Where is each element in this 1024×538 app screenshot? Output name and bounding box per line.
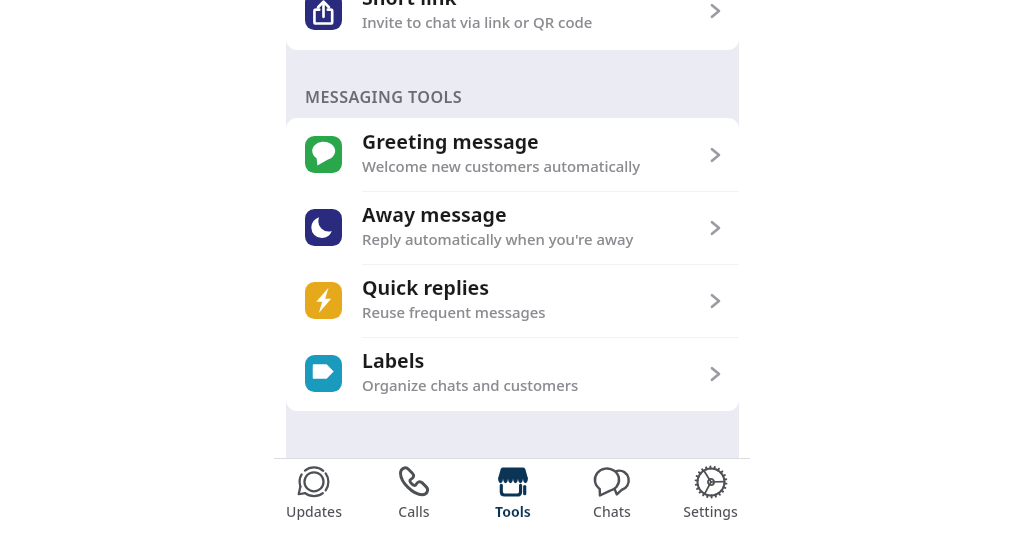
staticText: Reply automatically when you're away (362, 229, 634, 249)
button[interactable]: Calls (364, 459, 463, 538)
button[interactable]: Updates (264, 459, 364, 538)
staticText: Organize chats and customers (362, 375, 579, 395)
button[interactable]: Short link (286, 0, 739, 36)
staticText: Settings (683, 502, 738, 521)
staticText: Welcome new customers automatically (362, 156, 641, 176)
staticText: Updates (286, 502, 342, 521)
staticText: Chats (593, 502, 631, 521)
staticText: Reuse frequent messages (362, 302, 546, 322)
staticText: Short link (362, 0, 457, 11)
staticText: Quick replies (362, 274, 490, 301)
button[interactable]: Away message (286, 191, 739, 264)
button[interactable]: Chats (562, 459, 661, 538)
staticText: Away message (362, 201, 507, 228)
button[interactable]: Quick replies (286, 264, 739, 337)
button[interactable]: Settings (661, 459, 760, 538)
staticText: Tools (495, 502, 531, 521)
staticText: Invite to chat via link or QR code (362, 12, 593, 32)
button[interactable]: Greeting message (286, 118, 739, 191)
button[interactable]: Labels (286, 337, 739, 410)
staticText: Labels (362, 347, 425, 374)
staticText: Greeting message (362, 128, 539, 155)
button[interactable]: Tools (463, 459, 562, 538)
staticText: MESSAGING TOOLS (305, 86, 463, 108)
staticText: Calls (398, 502, 430, 521)
